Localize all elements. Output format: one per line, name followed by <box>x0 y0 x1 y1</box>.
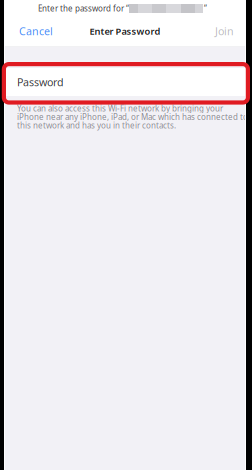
staticText: iPhone near any iPhone, iPad, or Mac whi… <box>17 112 248 122</box>
staticText: You can also access this Wi-Fi network b… <box>17 103 223 114</box>
staticText: Cancel <box>19 24 53 38</box>
button[interactable]: Cancel <box>13 19 71 43</box>
staticText: ” <box>204 3 207 14</box>
button[interactable]: Password <box>4 68 246 96</box>
staticText: Join <box>215 24 234 38</box>
staticText: Password <box>17 75 64 89</box>
button[interactable]: Join <box>200 19 240 43</box>
staticText: this network and has you in their contac… <box>17 120 176 131</box>
staticText: Enter Password <box>89 25 160 37</box>
staticText: Enter the password for “ <box>38 3 129 14</box>
